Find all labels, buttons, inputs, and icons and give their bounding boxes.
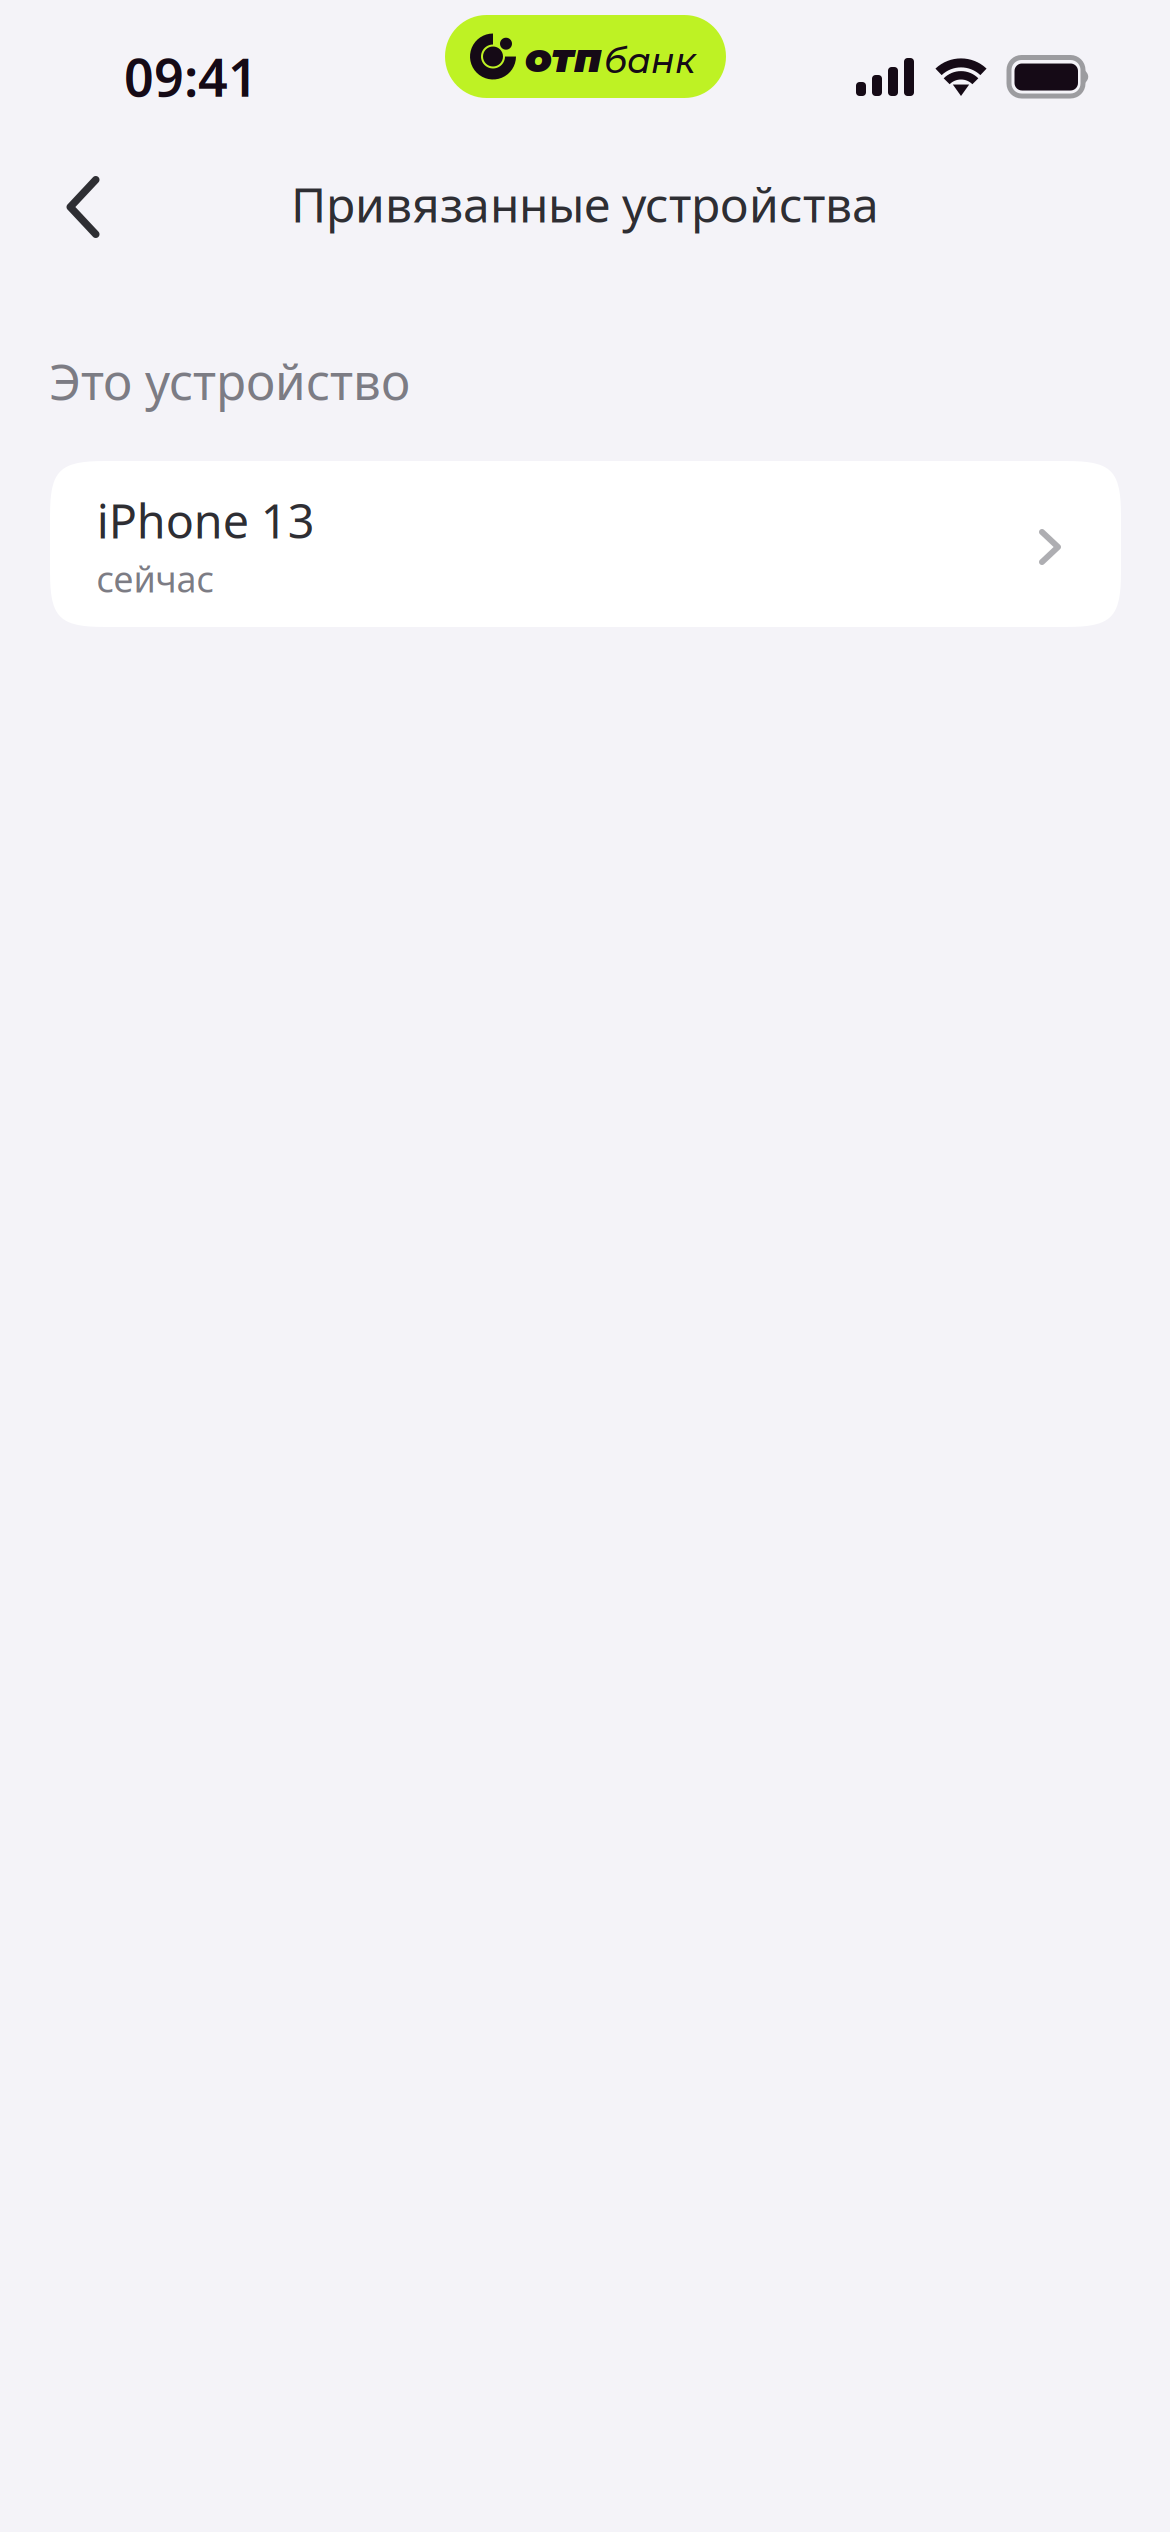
staticText: Это устройство [49,348,410,413]
staticText: отп [525,33,602,82]
staticText: Привязанные устройства [291,172,879,236]
staticText: сейчас [96,555,214,602]
staticText: 09:41 [124,42,258,111]
staticText: банк [604,39,696,82]
button[interactable]: Назад [20,144,146,270]
staticText: iPhone 13 [97,489,315,551]
button[interactable]: iPhone 13 [50,461,1121,627]
